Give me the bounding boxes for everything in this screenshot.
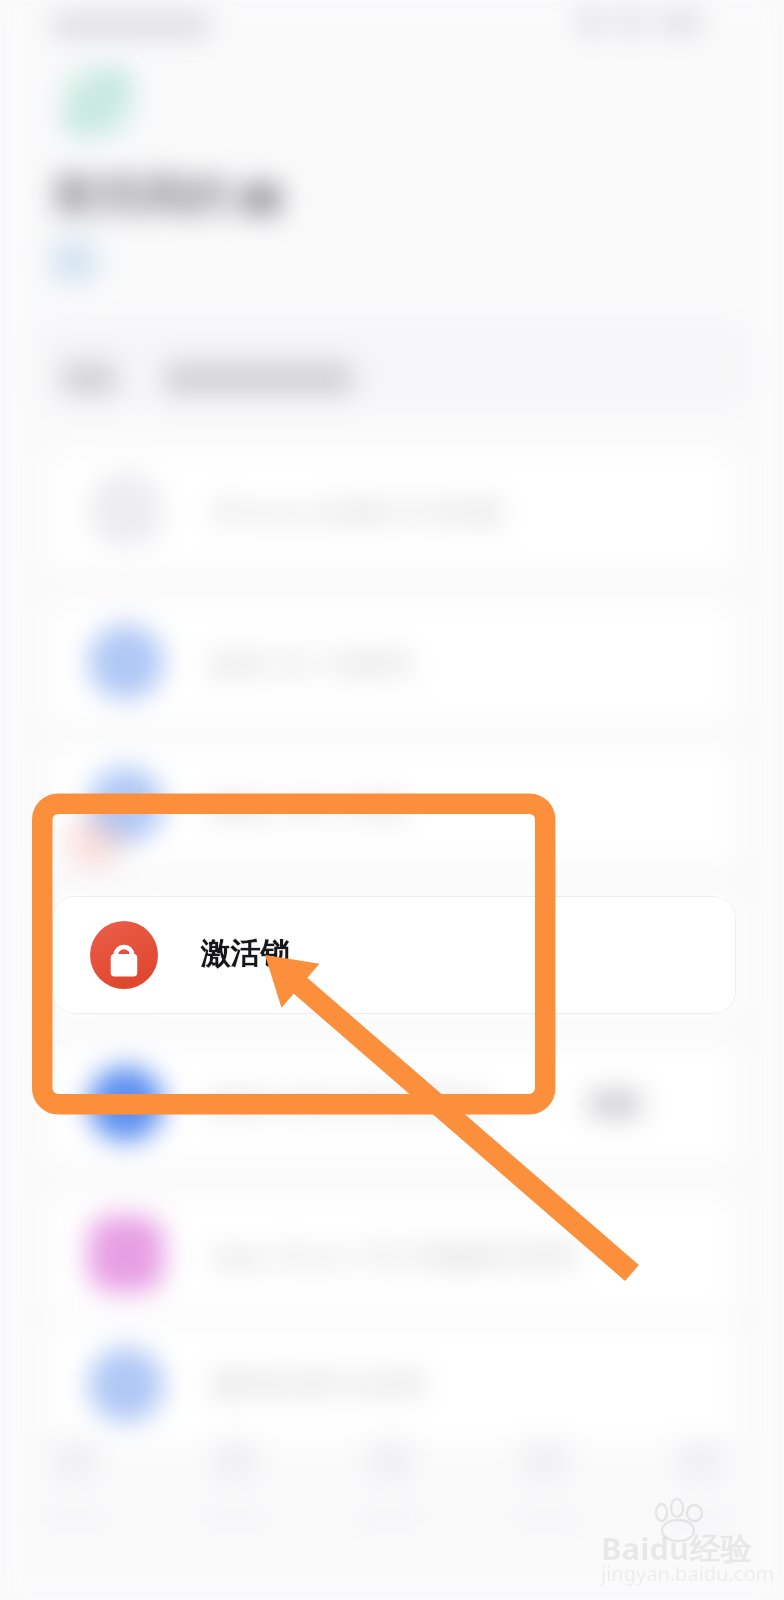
button[interactable] bbox=[636, 1420, 764, 1570]
button[interactable]: 隐私与安全性设置项 bbox=[46, 1044, 738, 1164]
staticText: 隐私与安全性设置项 bbox=[209, 1084, 488, 1123]
staticText: App Store 与订阅服务管理 bbox=[209, 1234, 577, 1276]
other: Highlight annotation bbox=[0, 0, 784, 1600]
button[interactable]: 激活锁 bbox=[52, 896, 736, 1014]
staticText: jingyan.baidu.com bbox=[601, 1560, 775, 1587]
button[interactable]: 激活锁 bbox=[46, 895, 738, 1015]
staticText: Baidu经验 bbox=[601, 1527, 752, 1569]
button[interactable]: App Store 与订阅服务管理 bbox=[46, 1194, 738, 1314]
button[interactable]: iPhone 的显示与亮度 bbox=[46, 450, 738, 570]
button[interactable]: 通用设置与说明 bbox=[46, 1325, 738, 1445]
button[interactable]: 面容 ID 与密码 bbox=[46, 602, 738, 722]
button[interactable] bbox=[11, 1420, 139, 1570]
staticText: 紧急 SOS 求救 bbox=[209, 785, 408, 827]
staticText: 激活锁 bbox=[200, 935, 290, 973]
button[interactable]: 紧急 SOS 求救 bbox=[46, 745, 738, 865]
staticText: 激活锁 bbox=[209, 935, 299, 973]
staticText: 查找我的 bbox=[50, 168, 230, 225]
